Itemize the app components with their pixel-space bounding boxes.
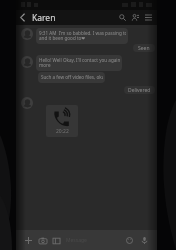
button[interactable]: Back <box>16 11 29 24</box>
staticText: Karen <box>32 12 56 24</box>
button[interactable]: 9:31 AM I’m so babbled. I was passing to… <box>36 28 128 44</box>
button[interactable]: Contact details <box>129 11 142 24</box>
staticText: Message <box>66 237 87 244</box>
button[interactable]: Voice message <box>138 234 151 247</box>
button[interactable]: Add attachment <box>22 234 35 247</box>
button[interactable]: Voice call, 20:22 <box>46 105 78 137</box>
staticText: 9:31 AM I’m so babbled. I was passing to… <box>39 30 126 42</box>
button[interactable]: Delivered <box>124 86 155 94</box>
button[interactable]: Seen <box>133 44 155 52</box>
staticText: Such a few off video files, okay? <box>41 74 103 80</box>
staticText: Delivered <box>128 87 151 94</box>
button[interactable]: Camera <box>36 234 49 247</box>
button[interactable]: Hello! Well Okay, I’ll contact you again… <box>36 55 122 71</box>
button[interactable]: More options <box>142 11 155 24</box>
staticText: 20:22 <box>56 128 69 135</box>
button[interactable]: Such a few off video files, okay? <box>38 72 105 83</box>
button[interactable]: Emoji <box>123 234 136 247</box>
button[interactable]: Search <box>116 11 129 24</box>
button[interactable]: Gallery <box>50 234 63 247</box>
staticText: Hello! Well Okay, I’ll contact you again… <box>39 57 120 69</box>
staticText: Seen <box>138 45 150 52</box>
